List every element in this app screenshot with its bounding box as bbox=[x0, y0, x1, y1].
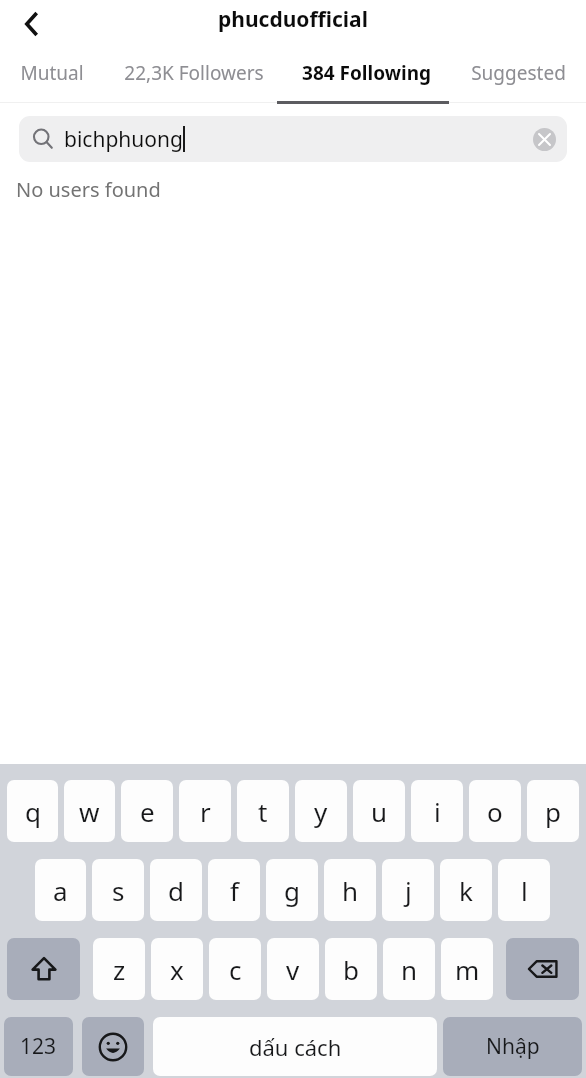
staticText: 22,3K Followers bbox=[124, 60, 264, 86]
button[interactable]: t bbox=[237, 780, 289, 842]
staticText: a bbox=[53, 873, 68, 908]
button[interactable]: w bbox=[64, 780, 115, 842]
button[interactable]: v bbox=[267, 938, 319, 1000]
staticText: d bbox=[168, 873, 184, 908]
staticText: b bbox=[343, 952, 359, 987]
button[interactable]: o bbox=[469, 780, 521, 842]
staticText: h bbox=[342, 873, 359, 908]
button[interactable]: i bbox=[411, 780, 463, 842]
staticText: v bbox=[286, 952, 300, 987]
staticText: phucduofficial bbox=[218, 5, 368, 34]
staticText: j bbox=[405, 873, 412, 908]
button[interactable]: a bbox=[35, 859, 86, 921]
staticText: w bbox=[79, 794, 100, 829]
button[interactable]: dấu cách bbox=[153, 1017, 437, 1076]
button[interactable]: r bbox=[179, 780, 231, 842]
button[interactable]: Mutual bbox=[0, 48, 104, 98]
staticText: 384 Following bbox=[302, 60, 431, 86]
staticText: t bbox=[258, 794, 268, 829]
button[interactable]: h bbox=[324, 859, 376, 921]
staticText: l bbox=[521, 873, 528, 908]
staticText: r bbox=[200, 794, 211, 829]
button[interactable]: Shift bbox=[7, 938, 80, 1000]
button[interactable]: m bbox=[441, 938, 493, 1000]
staticText: s bbox=[112, 873, 125, 908]
staticText: o bbox=[487, 794, 503, 829]
staticText: n bbox=[401, 952, 418, 987]
button[interactable]: x bbox=[151, 938, 203, 1000]
staticText: Suggested bbox=[471, 60, 566, 86]
button[interactable]: Suggested bbox=[450, 48, 586, 98]
button[interactable]: f bbox=[208, 859, 260, 921]
staticText: m bbox=[455, 952, 480, 987]
button[interactable]: b bbox=[325, 938, 377, 1000]
staticText: No users found bbox=[16, 176, 161, 203]
button[interactable]: e bbox=[121, 780, 173, 842]
button[interactable]: 22,3K Followers bbox=[104, 48, 283, 98]
staticText: e bbox=[140, 794, 155, 829]
button[interactable]: 384 Following bbox=[283, 48, 450, 98]
staticText: i bbox=[434, 794, 441, 829]
staticText: x bbox=[170, 952, 184, 987]
staticText: g bbox=[284, 873, 300, 908]
staticText: y bbox=[314, 794, 328, 829]
staticText: c bbox=[229, 952, 242, 987]
staticText: k bbox=[459, 873, 473, 908]
staticText: Mutual bbox=[20, 60, 84, 86]
staticText: bichphuong bbox=[64, 125, 183, 154]
button[interactable]: bichphuong bbox=[19, 116, 567, 162]
staticText: p bbox=[545, 794, 561, 829]
button[interactable]: s bbox=[92, 859, 144, 921]
button[interactable]: k bbox=[440, 859, 492, 921]
button[interactable]: Emoji bbox=[82, 1017, 144, 1076]
button[interactable]: g bbox=[266, 859, 318, 921]
button[interactable]: y bbox=[295, 780, 347, 842]
button[interactable]: l bbox=[498, 859, 550, 921]
staticText: 123 bbox=[20, 1032, 57, 1061]
staticText: dấu cách bbox=[249, 1032, 342, 1062]
button[interactable]: Nhập bbox=[443, 1017, 582, 1076]
staticText: q bbox=[25, 794, 41, 829]
button[interactable]: Back bbox=[8, 0, 56, 48]
staticText: z bbox=[113, 952, 126, 987]
staticText: u bbox=[371, 794, 388, 829]
button[interactable]: p bbox=[527, 780, 579, 842]
button[interactable]: 123 bbox=[4, 1017, 73, 1076]
button[interactable]: d bbox=[150, 859, 202, 921]
staticText: f bbox=[230, 873, 239, 908]
button[interactable]: n bbox=[383, 938, 435, 1000]
button[interactable]: z bbox=[93, 938, 145, 1000]
button[interactable]: c bbox=[209, 938, 261, 1000]
staticText: Nhập bbox=[486, 1032, 540, 1061]
button[interactable]: Backspace bbox=[506, 938, 579, 1000]
button[interactable]: q bbox=[7, 780, 58, 842]
button[interactable]: Clear bbox=[533, 128, 556, 151]
button[interactable]: j bbox=[382, 859, 434, 921]
button[interactable]: u bbox=[353, 780, 405, 842]
